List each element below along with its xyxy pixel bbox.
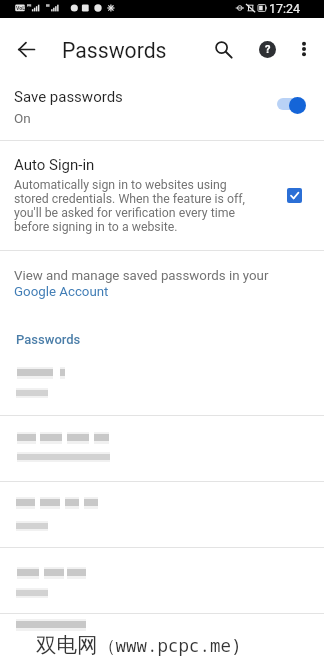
staticText: VoLTE xyxy=(16,5,31,11)
staticText: Google Account xyxy=(14,284,109,300)
staticText: Passwords xyxy=(16,332,81,347)
staticText: Passwords xyxy=(62,38,167,63)
button[interactable]: Navigate up xyxy=(7,30,45,68)
button[interactable]: More options xyxy=(286,31,322,67)
staticText: （www.pcpc.me) xyxy=(98,633,242,657)
button[interactable] xyxy=(0,355,324,415)
button[interactable] xyxy=(0,548,324,613)
staticText: Automatically sign in to websites using … xyxy=(14,178,246,234)
button[interactable]: Save passwords xyxy=(0,76,324,140)
staticText: Auto Sign-in xyxy=(14,156,95,174)
staticText: 17:24 xyxy=(269,1,301,16)
button[interactable]: Search xyxy=(203,29,243,69)
staticText: ? xyxy=(265,43,271,56)
staticText: View and manage saved passwords in your xyxy=(14,268,269,284)
button[interactable] xyxy=(0,614,324,654)
button[interactable] xyxy=(0,482,324,547)
staticText: On xyxy=(14,110,31,126)
button[interactable] xyxy=(0,416,324,481)
staticText: Save passwords xyxy=(14,88,123,106)
button[interactable]: Help xyxy=(247,29,287,69)
button[interactable]: Auto Sign-in xyxy=(0,141,324,250)
button[interactable]: View and manage saved passwords in your xyxy=(0,251,324,309)
staticText: 双电网 xyxy=(36,632,98,658)
